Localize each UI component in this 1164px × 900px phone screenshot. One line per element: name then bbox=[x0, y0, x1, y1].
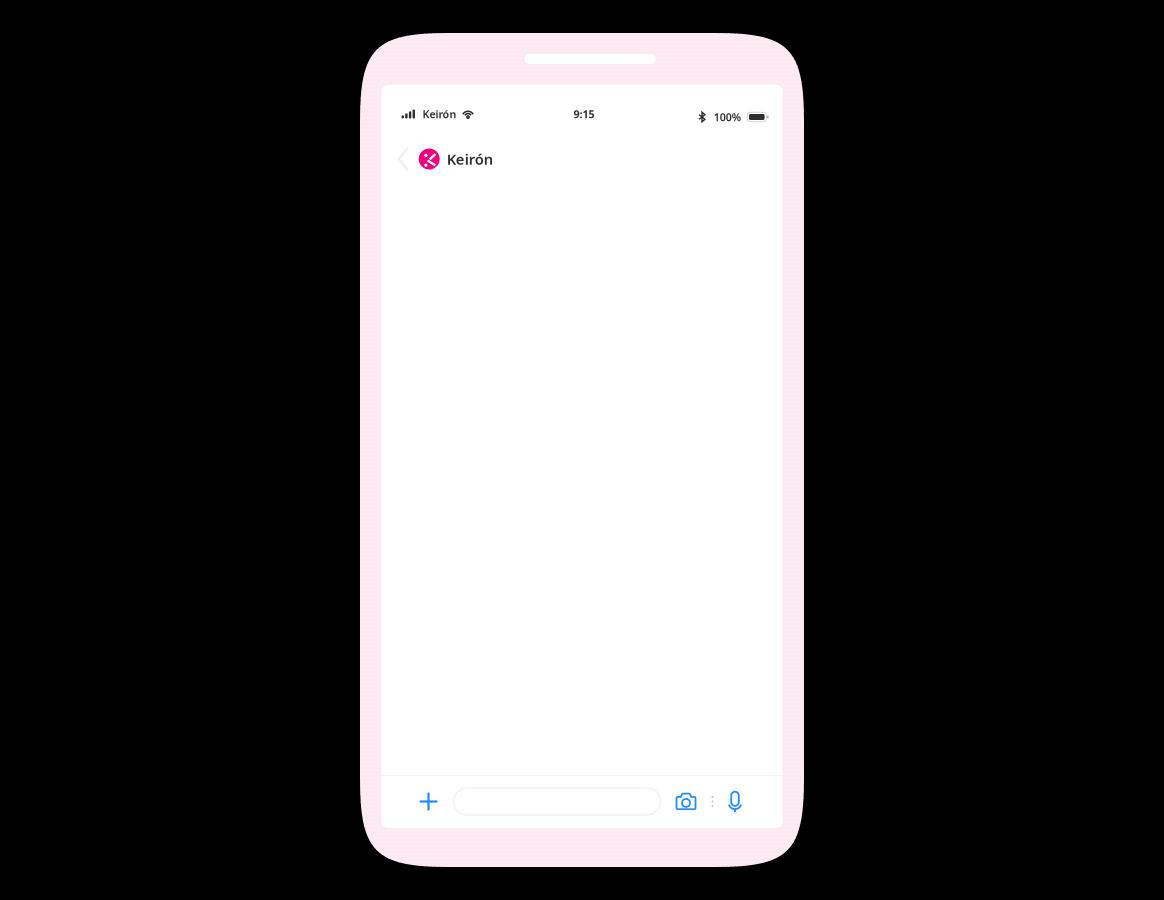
button[interactable]: Camera bbox=[675, 781, 696, 821]
button[interactable]: Back bbox=[393, 143, 419, 175]
staticText: Keirón bbox=[447, 149, 493, 169]
staticText: 9:15 bbox=[573, 107, 594, 121]
staticText: Keirón bbox=[422, 107, 456, 121]
button[interactable]: Add attachment bbox=[415, 781, 441, 821]
staticText: 100% bbox=[714, 110, 741, 124]
button[interactable]: Keirón bbox=[419, 142, 499, 175]
button[interactable]: Voice message bbox=[727, 781, 742, 821]
button[interactable]: Message bbox=[453, 781, 660, 821]
